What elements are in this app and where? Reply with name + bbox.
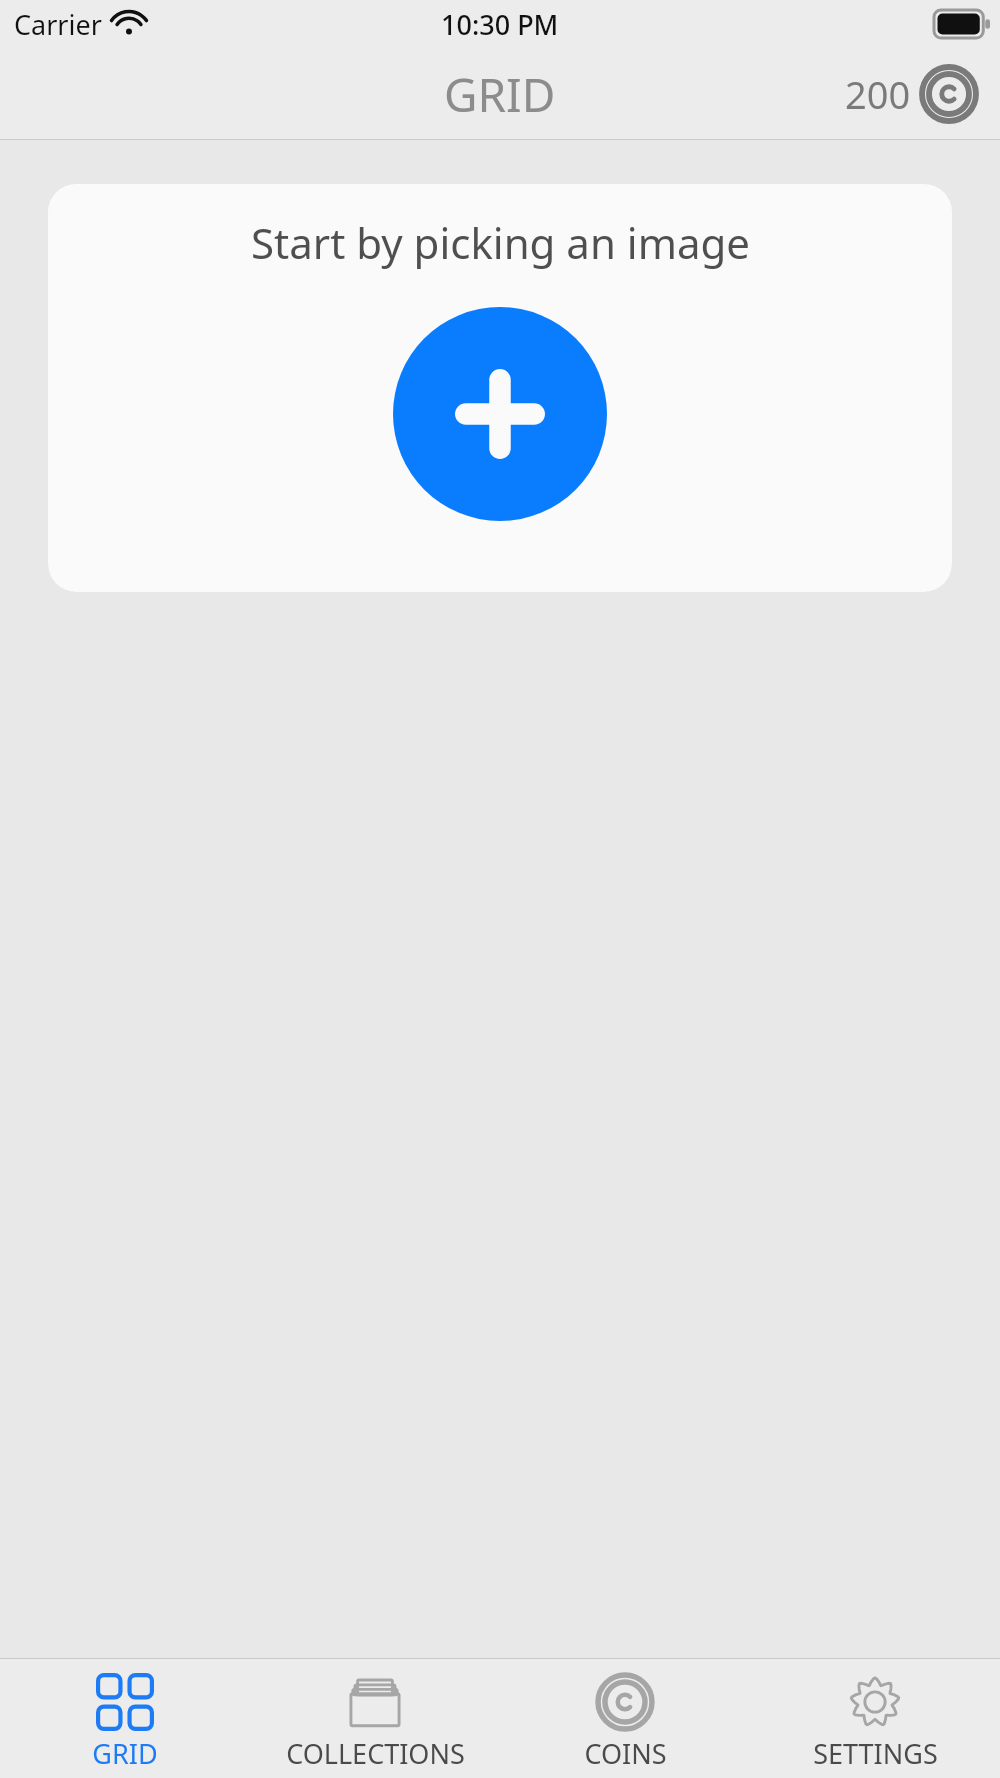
staticText: Carrier: [14, 6, 102, 43]
staticText: GRID: [444, 63, 556, 126]
staticText: COINS: [584, 1735, 667, 1772]
button[interactable]: 200: [845, 65, 978, 123]
button[interactable]: SETTINGS: [750, 1659, 1000, 1778]
button[interactable]: Pick an image: [393, 307, 607, 521]
staticText: 200: [845, 68, 911, 120]
staticText: SETTINGS: [813, 1735, 938, 1772]
staticText: GRID: [92, 1735, 158, 1772]
staticText: Start by picking an image: [251, 214, 750, 271]
button[interactable]: GRID: [0, 1659, 250, 1778]
button[interactable]: COLLECTIONS: [250, 1659, 500, 1778]
staticText: 10:30 PM: [441, 6, 559, 43]
other: Coins balance: [920, 65, 978, 123]
staticText: COLLECTIONS: [286, 1735, 465, 1772]
button[interactable]: COINS: [500, 1659, 750, 1778]
